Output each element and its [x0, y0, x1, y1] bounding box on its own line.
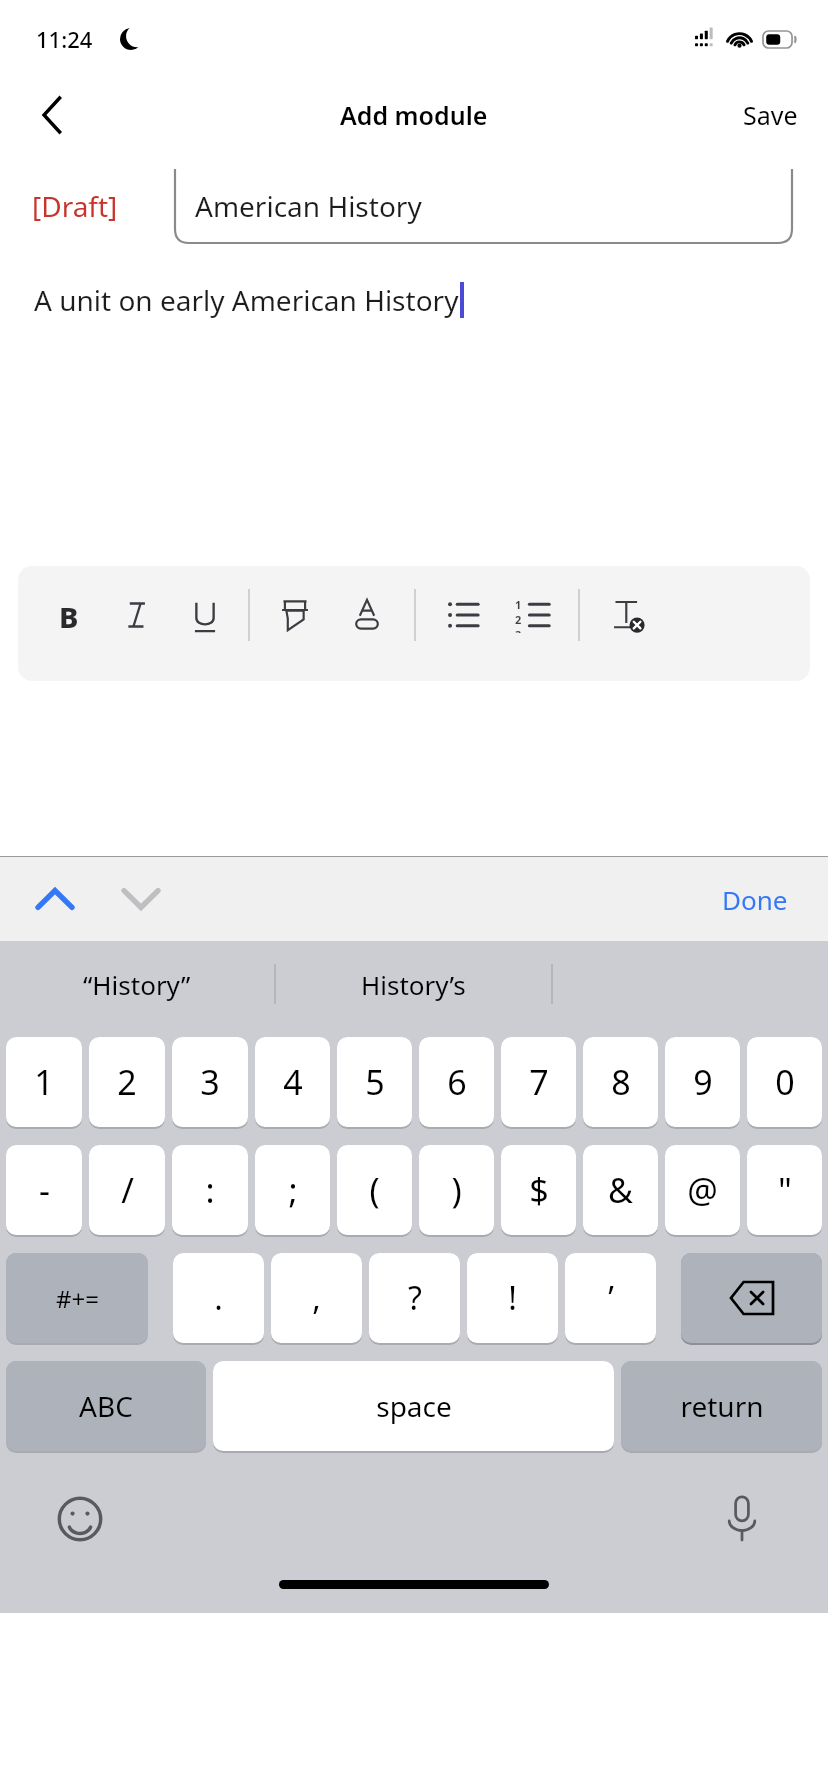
staticText: space [376, 1387, 452, 1425]
button[interactable]: Done [712, 872, 798, 927]
staticText: 1 [34, 1059, 54, 1105]
button[interactable]: 2 [89, 1037, 165, 1133]
button[interactable]: Numbered list [506, 588, 560, 642]
button[interactable]: Text color [340, 588, 394, 642]
button[interactable]: ! [467, 1253, 558, 1349]
staticText: ABC [79, 1387, 133, 1425]
staticText: 1 [515, 597, 522, 612]
button[interactable]: space [213, 1361, 614, 1457]
staticText: 7 [529, 1059, 549, 1105]
staticText: Done [722, 882, 788, 917]
button[interactable]: Highlight [268, 588, 322, 642]
staticText: B [59, 597, 79, 633]
button[interactable]: Emoji [50, 1489, 110, 1549]
button[interactable]: ? [369, 1253, 460, 1349]
button[interactable]: American History [175, 169, 792, 243]
button[interactable]: ( [337, 1145, 412, 1241]
staticText: return [680, 1387, 764, 1425]
staticText: : [205, 1167, 215, 1213]
button[interactable]: 5 [337, 1037, 412, 1133]
staticText: A unit on early American History [34, 281, 459, 319]
button[interactable]: Bold [42, 588, 96, 642]
button[interactable]: Previous field [24, 868, 86, 930]
button[interactable]: . [173, 1253, 264, 1349]
button[interactable]: Clear formatting [600, 588, 654, 642]
staticText: , [312, 1276, 321, 1320]
button[interactable]: 0 [747, 1037, 822, 1133]
button[interactable]: / [89, 1145, 165, 1241]
staticText: 6 [447, 1059, 467, 1105]
staticText: Save [743, 98, 798, 132]
staticText: & [608, 1167, 633, 1213]
button[interactable]: " [747, 1145, 822, 1241]
button[interactable]: Dictation [712, 1489, 772, 1549]
button[interactable]: A unit on early American History [0, 256, 828, 566]
button[interactable]: 8 [583, 1037, 658, 1133]
button[interactable]: Save [735, 88, 806, 142]
staticText: 2 [515, 612, 522, 627]
staticText: 5 [365, 1059, 385, 1105]
staticText: 3 [200, 1059, 220, 1105]
staticText: Add module [340, 98, 488, 132]
staticText: “History” [83, 967, 191, 1002]
staticText: #+= [56, 1282, 99, 1315]
button[interactable]: Italic [110, 588, 164, 642]
staticText: 2 [117, 1059, 137, 1105]
staticText: 8 [611, 1059, 631, 1105]
button[interactable]: 3 [172, 1037, 248, 1133]
button[interactable]: ; [255, 1145, 330, 1241]
button[interactable]: @ [665, 1145, 740, 1241]
button[interactable]: return [621, 1361, 822, 1457]
staticText: 0 [775, 1059, 795, 1105]
button[interactable]: - [6, 1145, 82, 1241]
staticText: ; [288, 1167, 298, 1213]
button[interactable]: 1 [6, 1037, 82, 1133]
staticText: . [214, 1276, 223, 1320]
staticText: / [121, 1167, 134, 1213]
staticText: ! [508, 1276, 517, 1320]
button[interactable]: History’s [276, 941, 551, 1027]
staticText: 9 [693, 1059, 713, 1105]
button[interactable]: ) [419, 1145, 494, 1241]
staticText: @ [687, 1167, 718, 1213]
button[interactable]: Bulleted list [436, 588, 490, 642]
button[interactable]: 4 [255, 1037, 330, 1133]
staticText: 4 [283, 1059, 303, 1105]
button[interactable]: , [271, 1253, 362, 1349]
button[interactable]: “History” [0, 941, 274, 1027]
button[interactable]: : [172, 1145, 248, 1241]
button[interactable]: #+= [6, 1253, 148, 1349]
button[interactable]: Next field [110, 868, 172, 930]
button[interactable]: Underline [178, 588, 232, 642]
staticText: 11:24 [36, 24, 93, 54]
staticText: $ [529, 1167, 549, 1213]
button[interactable]: $ [501, 1145, 576, 1241]
staticText: American History [195, 187, 422, 225]
staticText: " [778, 1167, 792, 1213]
button[interactable]: ABC [6, 1361, 206, 1457]
staticText: ) [451, 1167, 462, 1213]
button[interactable]: & [583, 1145, 658, 1241]
staticText: [Draft] [32, 187, 118, 225]
button[interactable]: 6 [419, 1037, 494, 1133]
staticText: History’s [361, 967, 466, 1002]
button[interactable]: Back [18, 81, 86, 149]
button[interactable]: 9 [665, 1037, 740, 1133]
button[interactable]: Backspace [681, 1253, 822, 1349]
staticText: ( [369, 1167, 380, 1213]
button[interactable]: ’ [565, 1253, 656, 1349]
staticText: - [39, 1167, 50, 1213]
staticText: 3 [515, 627, 522, 633]
staticText: ’ [608, 1276, 614, 1320]
staticText: ? [408, 1276, 422, 1320]
button[interactable]: 7 [501, 1037, 576, 1133]
